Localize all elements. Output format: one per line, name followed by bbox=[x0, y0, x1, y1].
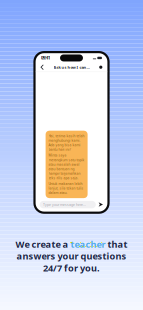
staticText: Ask us how I can help bbox=[54, 65, 89, 70]
staticText: that bbox=[105, 238, 127, 250]
staticText: 09:41 bbox=[41, 55, 50, 61]
staticText: 24/7 for you. bbox=[43, 262, 100, 274]
staticText: Type your message here... bbox=[43, 202, 86, 207]
button[interactable]: Send bbox=[98, 202, 103, 207]
staticText: answers your questions bbox=[16, 250, 126, 262]
staticText: teacher bbox=[70, 238, 105, 250]
staticText: Untuk makanan lebih lanjut, sila tekan t… bbox=[49, 181, 84, 195]
button[interactable]: Back bbox=[39, 63, 46, 72]
button[interactable]: Profile bbox=[97, 64, 104, 71]
staticText: Hai, terima kasih telah menghubungi kami… bbox=[49, 134, 85, 152]
staticText: Minta saya merangkum satu topik atau mas… bbox=[49, 153, 85, 180]
staticText: We create a bbox=[15, 238, 70, 250]
